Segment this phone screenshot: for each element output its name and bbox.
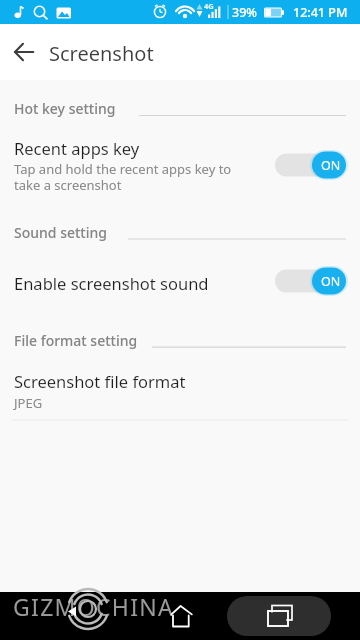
button[interactable] <box>0 262 360 302</box>
staticText: File format setting <box>14 331 138 350</box>
staticText: ON <box>321 157 341 174</box>
staticText: 39% <box>232 4 257 21</box>
button[interactable]: Recent apps <box>227 596 331 636</box>
staticText: Enable screenshot sound <box>14 272 209 294</box>
staticText: take a screenshot <box>14 176 122 194</box>
staticText: Hot key setting <box>14 99 116 118</box>
staticText: Recent apps key <box>14 137 140 159</box>
staticText: Tap and hold the recent apps key to <box>14 160 232 178</box>
button[interactable]: Back <box>6 34 42 70</box>
staticText: Sound setting <box>14 223 107 242</box>
staticText: GIZMOCHINA <box>13 591 175 622</box>
button[interactable]: Toggle on <box>271 148 350 182</box>
staticText: Screenshot <box>49 40 154 67</box>
button[interactable]: Back <box>54 594 98 638</box>
staticText: JPEG <box>14 394 43 412</box>
staticText: 4G <box>204 1 214 11</box>
button[interactable] <box>0 125 360 205</box>
staticText: ON <box>321 273 341 290</box>
staticText: Screenshot file format <box>14 370 186 392</box>
staticText: 12:41 PM <box>293 4 348 21</box>
button[interactable]: Home <box>160 594 202 638</box>
button[interactable]: Toggle on <box>271 264 350 298</box>
button[interactable] <box>0 362 360 420</box>
